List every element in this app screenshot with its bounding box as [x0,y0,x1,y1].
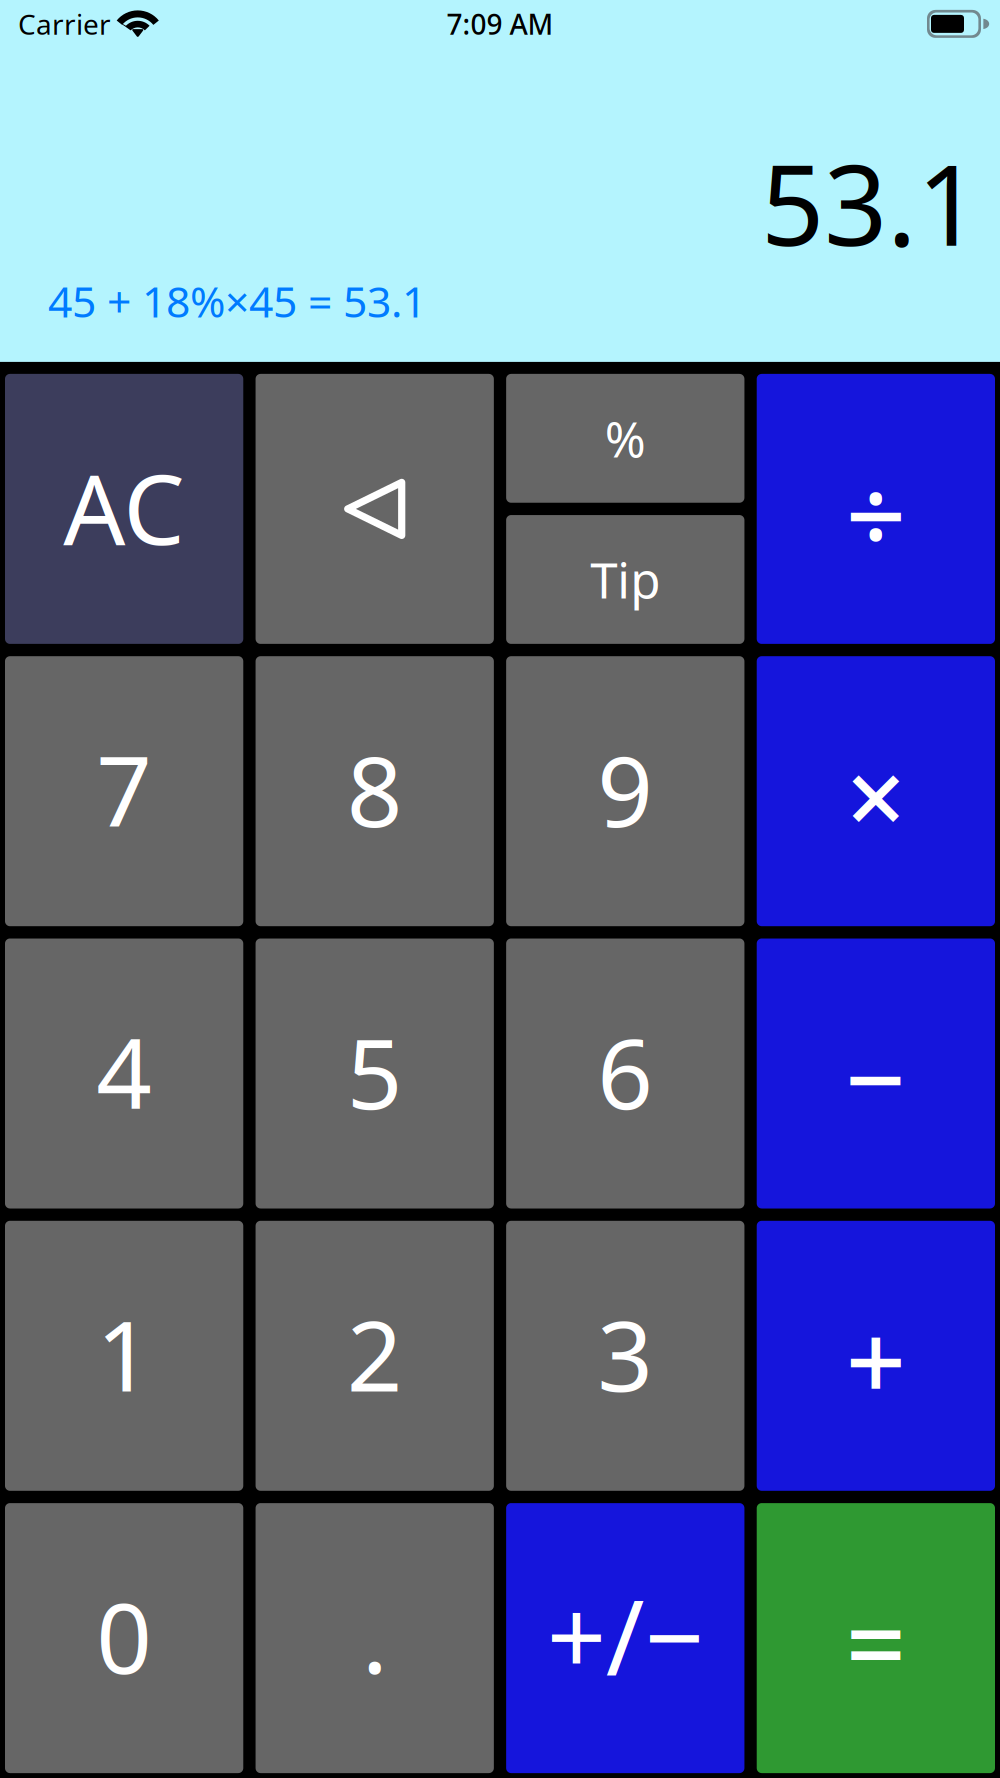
button[interactable]: 2 [256,1221,494,1491]
staticText: +/− [547,1566,704,1704]
button[interactable]: + [757,1221,995,1491]
button[interactable]: 6 [506,938,744,1208]
button[interactable]: AC [5,374,243,644]
button[interactable]: 9 [506,656,744,926]
button[interactable]: ÷ [757,374,995,644]
button[interactable]: 0 [5,1503,243,1773]
staticText: + [846,1290,906,1430]
staticText: ÷ [846,443,906,583]
staticText: 7 [96,725,152,854]
staticText: 6 [597,1007,653,1136]
staticText: % [605,406,646,471]
button[interactable]: − [757,938,995,1208]
staticText: . [362,1571,388,1701]
staticText: 3 [597,1289,653,1418]
button[interactable]: Tip [506,515,744,644]
staticText: 5 [347,1007,403,1136]
staticText: 2 [347,1289,403,1418]
button[interactable]: Delete [256,374,494,644]
button[interactable]: 8 [256,656,494,926]
button[interactable]: = [757,1503,995,1773]
staticText: = [846,1572,906,1712]
staticText: 1 [96,1289,152,1418]
staticText: 4 [96,1007,152,1136]
button[interactable]: % [506,374,744,503]
button[interactable]: 5 [256,938,494,1208]
staticText: × [846,725,906,865]
button[interactable]: 4 [5,938,243,1208]
button[interactable]: +/− [506,1503,744,1773]
staticText: − [845,1008,906,1147]
button[interactable]: 3 [506,1221,744,1491]
staticText: 9 [597,725,653,854]
button[interactable]: × [757,656,995,926]
button[interactable]: . [256,1503,494,1773]
staticText: 53.1 [761,129,980,276]
staticText: Tip [590,547,660,612]
staticText: AC [63,442,185,572]
button[interactable]: 1 [5,1221,243,1491]
staticText: 7:09 AM [446,5,553,42]
staticText: 8 [347,725,403,854]
staticText: 0 [96,1571,152,1701]
button[interactable]: 7 [5,656,243,926]
staticText: Carrier [18,5,111,42]
staticText: 45 + 18%×45 = 53.1 [48,273,426,329]
